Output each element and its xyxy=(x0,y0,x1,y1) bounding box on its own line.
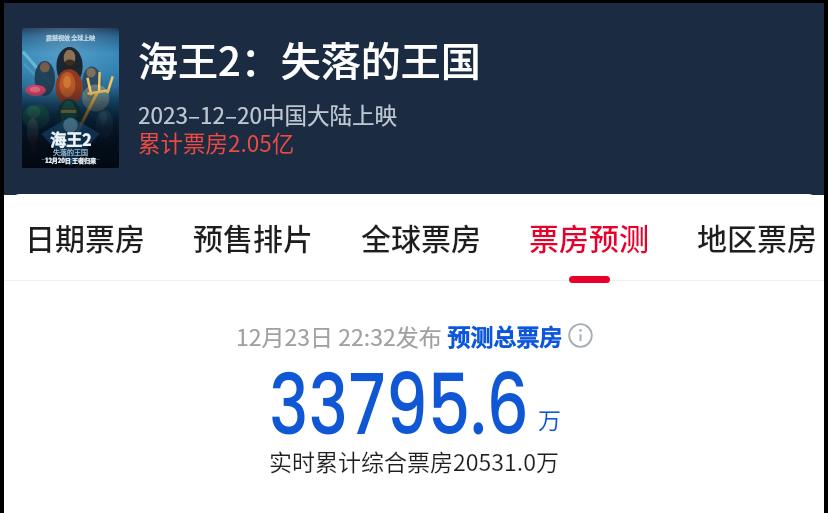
staticText: 日期票房 xyxy=(25,215,145,258)
button[interactable]: 票房预测 xyxy=(505,194,673,286)
staticText: 预售排片 xyxy=(193,215,313,258)
staticText: 2023–12–20中国大陆上映 xyxy=(138,98,398,131)
staticText: 海王2 xyxy=(50,127,92,150)
button[interactable]: 地区票房 xyxy=(673,194,824,286)
staticText: 33795.6 xyxy=(269,346,530,464)
staticText: 震撼视效 全球上映 xyxy=(46,33,96,42)
staticText: 海王2：失落的王国 xyxy=(138,30,481,88)
staticText: 12月23日 22:32发布 xyxy=(236,319,447,352)
staticText: 地区票房 xyxy=(697,215,817,258)
staticText: 12月20日 王者归来 xyxy=(45,156,97,165)
staticText: 票房预测 xyxy=(529,215,649,258)
staticText: 失落的王国 xyxy=(53,147,88,157)
button[interactable]: 日期票房 xyxy=(4,194,169,286)
staticText: 预测总票房 xyxy=(447,319,568,352)
button[interactable]: 预售排片 xyxy=(169,194,337,286)
staticText: 累计票房2.05亿 xyxy=(138,126,295,159)
staticText: 实时累计综合票房20531.0万 xyxy=(269,444,559,477)
button[interactable]: 全球票房 xyxy=(337,194,505,286)
staticText: 全球票房 xyxy=(361,215,481,258)
button[interactable]: 关于预测总票房 xyxy=(568,323,593,348)
staticText: 万 xyxy=(538,402,561,435)
